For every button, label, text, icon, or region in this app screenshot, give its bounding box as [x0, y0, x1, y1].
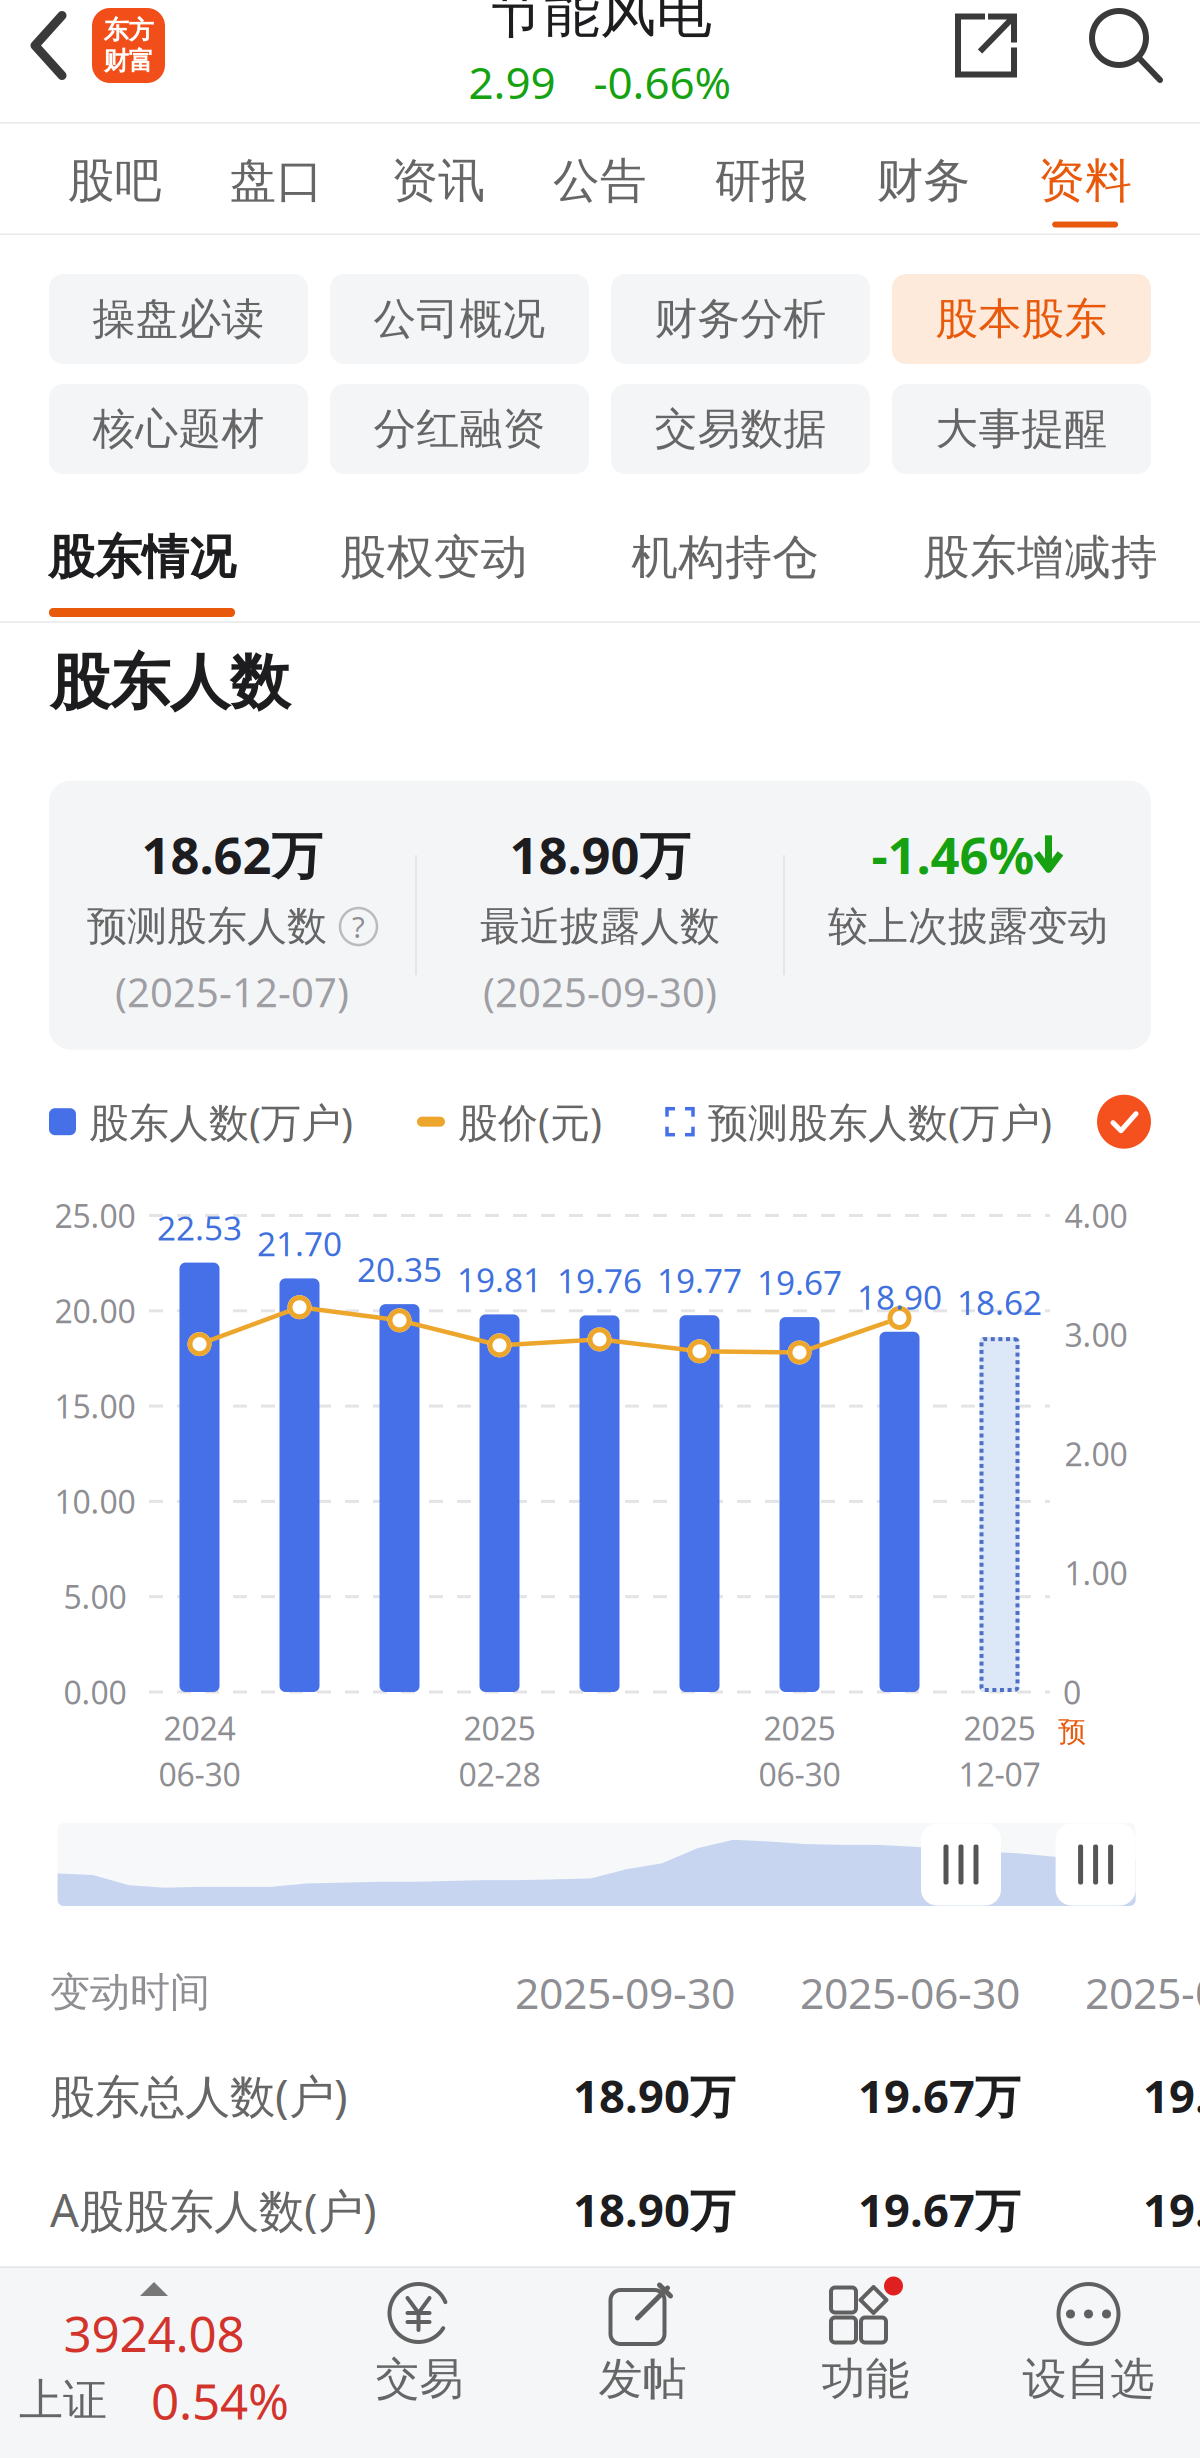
- button[interactable]: 核心题材: [49, 384, 308, 474]
- staticText: A股股东人数(户): [50, 2179, 377, 2240]
- button[interactable]: Adjust range: [1056, 1823, 1136, 1905]
- staticText: 资讯: [391, 152, 485, 209]
- staticText: 较上次披露变动: [828, 902, 1108, 951]
- button[interactable]: 股权变动: [340, 474, 528, 621]
- staticText: 25.00: [54, 1194, 135, 1237]
- staticText: 功能: [821, 2352, 909, 2406]
- staticText: 东方 财富: [103, 14, 153, 77]
- button[interactable]: 股东增减持: [923, 474, 1158, 621]
- staticText: 18.90万: [573, 2179, 735, 2240]
- staticText: 公司概况: [373, 293, 545, 345]
- staticText: 设自选: [1022, 2352, 1154, 2406]
- staticText: 大事提醒: [935, 403, 1107, 455]
- staticText: 19.81万: [1143, 2179, 1200, 2240]
- staticText: -0.66%: [593, 53, 731, 111]
- button[interactable]: 发帖: [531, 2268, 754, 2458]
- staticText: 19.67万: [858, 2179, 1020, 2240]
- staticText: 变动时间: [50, 1968, 210, 2017]
- button[interactable]: Toggle forecast series: [1097, 1095, 1151, 1149]
- button[interactable]: 盘口: [196, 123, 357, 233]
- staticText: 18.90万: [509, 821, 690, 888]
- staticText: 12-07: [958, 1753, 1040, 1795]
- staticText: 交易数据: [654, 403, 826, 455]
- staticText: 06-30: [158, 1753, 240, 1795]
- staticText: 20.00: [54, 1290, 135, 1332]
- staticText: 2025-09-30: [1085, 1964, 1200, 2021]
- staticText: 19.77: [657, 1258, 742, 1302]
- staticText: 3924.08: [63, 2300, 244, 2365]
- staticText: 股东总人数(户): [50, 2065, 348, 2126]
- staticText: 股东人数: [50, 646, 290, 720]
- staticText: (2025-09-30): [483, 965, 717, 1018]
- staticText: 18.90: [857, 1275, 942, 1319]
- staticText: 2025-09-30: [515, 1964, 735, 2021]
- staticText: 预: [1058, 1715, 1086, 1749]
- staticText: 18.62: [957, 1280, 1042, 1324]
- staticText: 公告: [553, 152, 647, 209]
- staticText: 2.00: [1064, 1432, 1127, 1475]
- button[interactable]: 资讯: [357, 123, 519, 233]
- staticText: 18.62万: [141, 821, 322, 888]
- staticText: 20.35: [357, 1247, 442, 1291]
- staticText: 财务分析: [654, 293, 826, 345]
- staticText: 21.70: [257, 1221, 342, 1266]
- staticText: 预测股东人数: [87, 902, 327, 951]
- staticText: 发帖: [598, 2352, 686, 2406]
- staticText: 3.00: [1064, 1313, 1127, 1356]
- staticText: 19.67万: [858, 2065, 1020, 2126]
- staticText: 交易: [375, 2352, 463, 2406]
- button[interactable]: 公告: [519, 123, 681, 233]
- staticText: 10.00: [54, 1480, 135, 1523]
- staticText: 财务: [876, 152, 970, 209]
- button[interactable]: Back: [30, 10, 67, 80]
- staticText: 股吧: [68, 152, 162, 209]
- staticText: 股本股东: [935, 293, 1107, 345]
- button[interactable]: 股本股东: [892, 274, 1151, 364]
- staticText: 股东人数(万户): [89, 1095, 353, 1148]
- button[interactable]: 交易数据: [611, 384, 870, 474]
- staticText: 15.00: [54, 1385, 135, 1427]
- button[interactable]: 功能: [754, 2268, 977, 2458]
- staticText: 2025: [763, 1707, 835, 1749]
- button[interactable]: Search: [1088, 7, 1163, 84]
- button[interactable]: 股吧: [34, 123, 196, 233]
- staticText: (2025-12-07): [115, 965, 349, 1018]
- staticText: 2025: [963, 1707, 1035, 1749]
- staticText: 2024: [163, 1707, 235, 1749]
- button[interactable]: 设自选: [977, 2268, 1200, 2458]
- staticText: 22.53: [157, 1205, 242, 1250]
- staticText: 机构持仓: [631, 529, 819, 586]
- button[interactable]: 大事提醒: [892, 384, 1151, 474]
- staticText: 节能风电: [488, 0, 712, 47]
- staticText: 02-28: [458, 1753, 540, 1795]
- staticText: 18.90万: [573, 2065, 735, 2126]
- staticText: 19.67: [757, 1260, 842, 1304]
- staticText: 1.00: [1064, 1552, 1127, 1594]
- staticText: 19.81: [457, 1257, 542, 1302]
- button[interactable]: 财务分析: [611, 274, 870, 364]
- staticText: -1.46%: [871, 821, 1034, 888]
- staticText: 19.76: [557, 1258, 642, 1302]
- button[interactable]: 分红融资: [330, 384, 589, 474]
- staticText: 核心题材: [92, 403, 264, 455]
- button[interactable]: 机构持仓: [631, 474, 819, 621]
- button[interactable]: 3924.08: [0, 2268, 308, 2458]
- staticText: 2.99: [468, 53, 555, 111]
- button[interactable]: Adjust range: [921, 1823, 1001, 1905]
- staticText: 19.81万: [1143, 2065, 1200, 2126]
- staticText: 2025-06-30: [800, 1964, 1020, 2021]
- button[interactable]: 财务: [843, 123, 1004, 233]
- button[interactable]: 股东情况: [48, 474, 236, 621]
- staticText: ?: [352, 907, 365, 946]
- staticText: 0.54%: [151, 2367, 289, 2433]
- staticText: 0.00: [63, 1671, 126, 1713]
- staticText: 最近披露人数: [480, 902, 720, 951]
- staticText: 0: [1063, 1671, 1081, 1713]
- button[interactable]: 交易: [308, 2268, 531, 2458]
- button[interactable]: Share: [955, 13, 1017, 77]
- button[interactable]: 研报: [681, 123, 843, 233]
- staticText: 5.00: [63, 1575, 126, 1618]
- button[interactable]: 公司概况: [330, 274, 589, 364]
- button[interactable]: 操盘必读: [49, 274, 308, 364]
- button[interactable]: 资料: [1004, 123, 1166, 233]
